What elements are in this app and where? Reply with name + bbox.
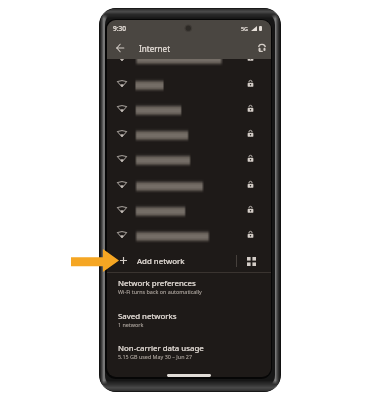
staticText: 9:30: [113, 24, 127, 33]
button[interactable]: Back: [112, 40, 127, 55]
button[interactable]: [107, 146, 271, 171]
button[interactable]: [107, 197, 271, 222]
staticText: 1 network: [118, 321, 144, 328]
button[interactable]: [107, 172, 271, 197]
button[interactable]: [107, 222, 271, 247]
button[interactable]: Headset: [254, 40, 270, 56]
staticText: Add network: [137, 256, 185, 267]
button[interactable]: [107, 96, 271, 121]
button[interactable]: Non-carrier data usage: [107, 338, 271, 370]
staticText: Wi-Fi turns back on automatically: [118, 288, 202, 295]
staticText: Non-carrier data usage: [118, 343, 204, 354]
button[interactable]: Add network: [107, 248, 271, 273]
staticText: 5G: [241, 25, 249, 32]
button[interactable]: Saved networks: [107, 306, 271, 338]
button[interactable]: [107, 45, 271, 70]
staticText: Saved networks: [118, 311, 177, 322]
button[interactable]: [107, 71, 271, 96]
button[interactable]: [107, 121, 271, 146]
staticText: Network preferences: [118, 278, 196, 289]
staticText: 5.15 GB used May 30 – Jun 27: [118, 353, 193, 360]
button[interactable]: Scan QR code: [245, 255, 257, 267]
staticText: Internet: [139, 43, 171, 54]
button[interactable]: Network preferences: [107, 273, 271, 305]
